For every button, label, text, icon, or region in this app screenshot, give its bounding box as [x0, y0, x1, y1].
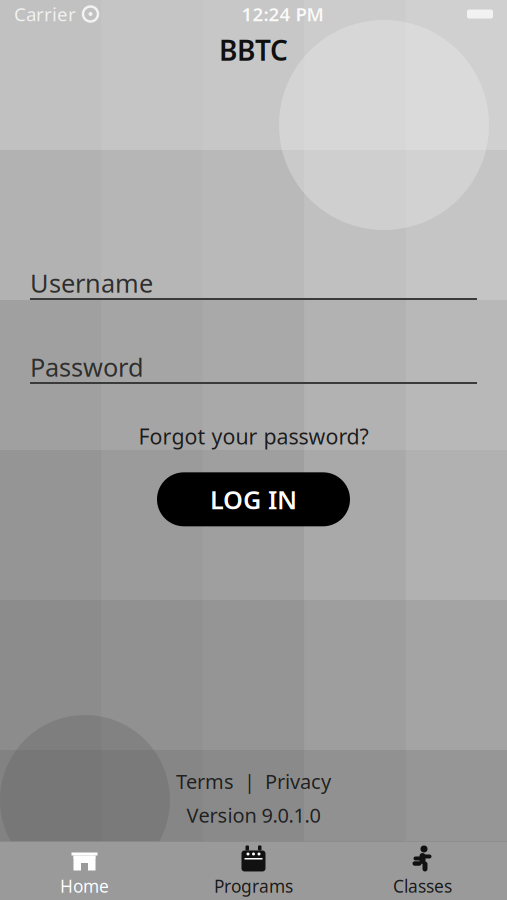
button[interactable]: Classes [338, 839, 507, 900]
button[interactable]: Forgot your password? [128, 416, 378, 456]
staticText: Username [30, 266, 153, 300]
button[interactable]: LOG IN [157, 472, 350, 526]
staticText: Carrier [14, 2, 76, 26]
staticText: 12:24 PM [241, 2, 323, 26]
button[interactable]: Privacy [265, 768, 331, 795]
button[interactable]: Programs [169, 839, 338, 900]
staticText: Terms [176, 768, 234, 795]
button[interactable]: Terms [176, 768, 234, 795]
staticText: Forgot your password? [138, 422, 368, 450]
staticText: Privacy [265, 768, 331, 795]
staticText: Classes [393, 874, 452, 897]
staticText: Programs [214, 874, 293, 897]
staticText: Password [30, 350, 144, 384]
staticText: LOG IN [210, 482, 297, 516]
staticText: | [234, 768, 265, 795]
staticText: BBTC [219, 31, 288, 69]
staticText: Version 9.0.1.0 [186, 802, 320, 828]
button[interactable]: Home [0, 839, 169, 900]
staticText: Home [60, 874, 109, 897]
